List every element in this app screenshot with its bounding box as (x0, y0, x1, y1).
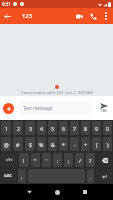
staticText: 4 (40, 125, 43, 132)
button[interactable]: ' (42, 153, 51, 167)
button[interactable]: ; (64, 153, 73, 167)
button[interactable]: 2 (13, 121, 23, 135)
button[interactable]: More options (100, 10, 112, 22)
button[interactable]: / (75, 153, 84, 167)
staticText: , (21, 173, 23, 180)
button[interactable]: & (48, 137, 57, 151)
staticText: ( (96, 141, 98, 148)
button[interactable]: @ (1, 137, 11, 151)
button[interactable]: 8 (81, 121, 90, 135)
button[interactable]: + (81, 137, 90, 151)
button[interactable]: 1 (1, 121, 11, 135)
staticText: @ (4, 141, 9, 148)
button[interactable]: Home (43, 184, 71, 200)
button[interactable]: 4 (37, 121, 46, 135)
staticText: $ (29, 141, 32, 148)
button[interactable]: - (70, 137, 79, 151)
staticText: ' (46, 157, 48, 164)
button[interactable]: % (37, 137, 46, 151)
button[interactable]: ! (19, 153, 29, 167)
button[interactable]: More symbols (1, 153, 17, 167)
button[interactable]: Video call (72, 9, 86, 23)
button[interactable]: # (13, 137, 23, 151)
staticText: ; (68, 157, 70, 164)
button[interactable]: Send SMS (96, 100, 112, 116)
staticText: 8 (84, 125, 87, 132)
button[interactable]: 0 (103, 121, 112, 135)
staticText: SMS (101, 109, 108, 113)
staticText: ABC (4, 173, 13, 179)
staticText: " (34, 157, 37, 164)
staticText: 7 (73, 125, 76, 132)
staticText: / (79, 157, 81, 164)
button[interactable]: Attach (3, 103, 14, 114)
staticText: Conversation with 123 · Jun 2, 9:59 AM (21, 90, 93, 95)
staticText: 1 (5, 125, 8, 132)
button[interactable]: $ (25, 137, 35, 151)
staticText: % (39, 141, 44, 148)
staticText: + (84, 141, 87, 148)
staticText: & (51, 141, 55, 148)
staticText: ! (23, 157, 25, 164)
button[interactable]: 5 (48, 121, 57, 135)
button[interactable]: Call (86, 9, 100, 23)
staticText: 123 (22, 12, 32, 20)
button[interactable]: Backspace (97, 153, 112, 167)
staticText: 9:51 (2, 1, 11, 7)
staticText: Text message (23, 105, 53, 111)
button[interactable]: Recents (71, 184, 99, 200)
button[interactable]: * (59, 137, 68, 151)
button[interactable]: 6 (59, 121, 68, 135)
button[interactable]: . (87, 169, 94, 183)
staticText: * (62, 141, 65, 148)
staticText: : (57, 157, 59, 164)
button[interactable]: 9 (92, 121, 101, 135)
staticText: 0 (106, 125, 109, 132)
staticText: 2 (17, 125, 20, 132)
staticText: 5 (51, 125, 54, 132)
button[interactable]: 7 (70, 121, 79, 135)
button[interactable]: 3 (25, 121, 35, 135)
staticText: ? (89, 157, 92, 164)
button[interactable]: ( (92, 137, 101, 151)
staticText: 6 (62, 125, 65, 132)
button[interactable]: , (18, 169, 26, 183)
button[interactable]: Back (1, 10, 13, 22)
staticText: 9 (95, 125, 98, 132)
button[interactable]: : (53, 153, 62, 167)
button[interactable]: ) (103, 137, 112, 151)
staticText: 3 (29, 125, 32, 132)
button[interactable]: ? (86, 153, 95, 167)
staticText: - (74, 141, 76, 148)
staticText: =\< (6, 157, 13, 163)
button[interactable]: Text message (17, 101, 92, 115)
staticText: . (90, 173, 92, 180)
button[interactable]: Enter (96, 169, 112, 183)
button[interactable]: ABC (1, 169, 16, 183)
staticText: # (16, 141, 20, 148)
staticText: ) (107, 141, 109, 148)
button[interactable]: " (31, 153, 40, 167)
button[interactable]: Back (15, 184, 43, 200)
